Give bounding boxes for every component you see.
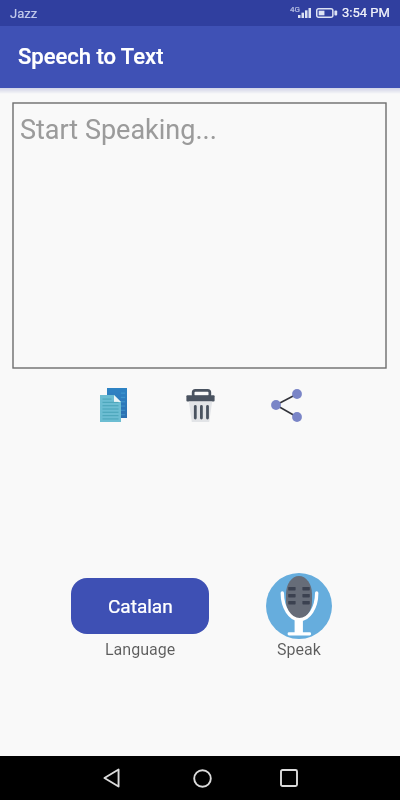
staticText: Language	[105, 640, 176, 659]
button[interactable]: Speak	[249, 640, 349, 659]
button[interactable]: Home	[178, 756, 226, 800]
button[interactable]: Back	[87, 756, 135, 800]
button[interactable]: Speak	[266, 573, 332, 639]
staticText: Start Speaking...	[20, 114, 217, 146]
button[interactable]: Delete	[176, 381, 224, 429]
staticText: Speech to Text	[18, 44, 164, 70]
staticText: Catalan	[108, 595, 173, 617]
staticText: 4G	[290, 5, 300, 14]
button[interactable]: Language	[71, 640, 209, 659]
staticText: Jazz	[10, 6, 38, 21]
button[interactable]: Share	[262, 381, 310, 429]
staticText: 3:54 PM	[342, 5, 390, 20]
button[interactable]: Catalan	[71, 578, 209, 634]
button[interactable]: Copy	[90, 381, 138, 429]
staticText: Speak	[277, 640, 321, 659]
button[interactable]: Recents	[265, 756, 313, 800]
button[interactable]: Recognized text	[13, 103, 386, 368]
